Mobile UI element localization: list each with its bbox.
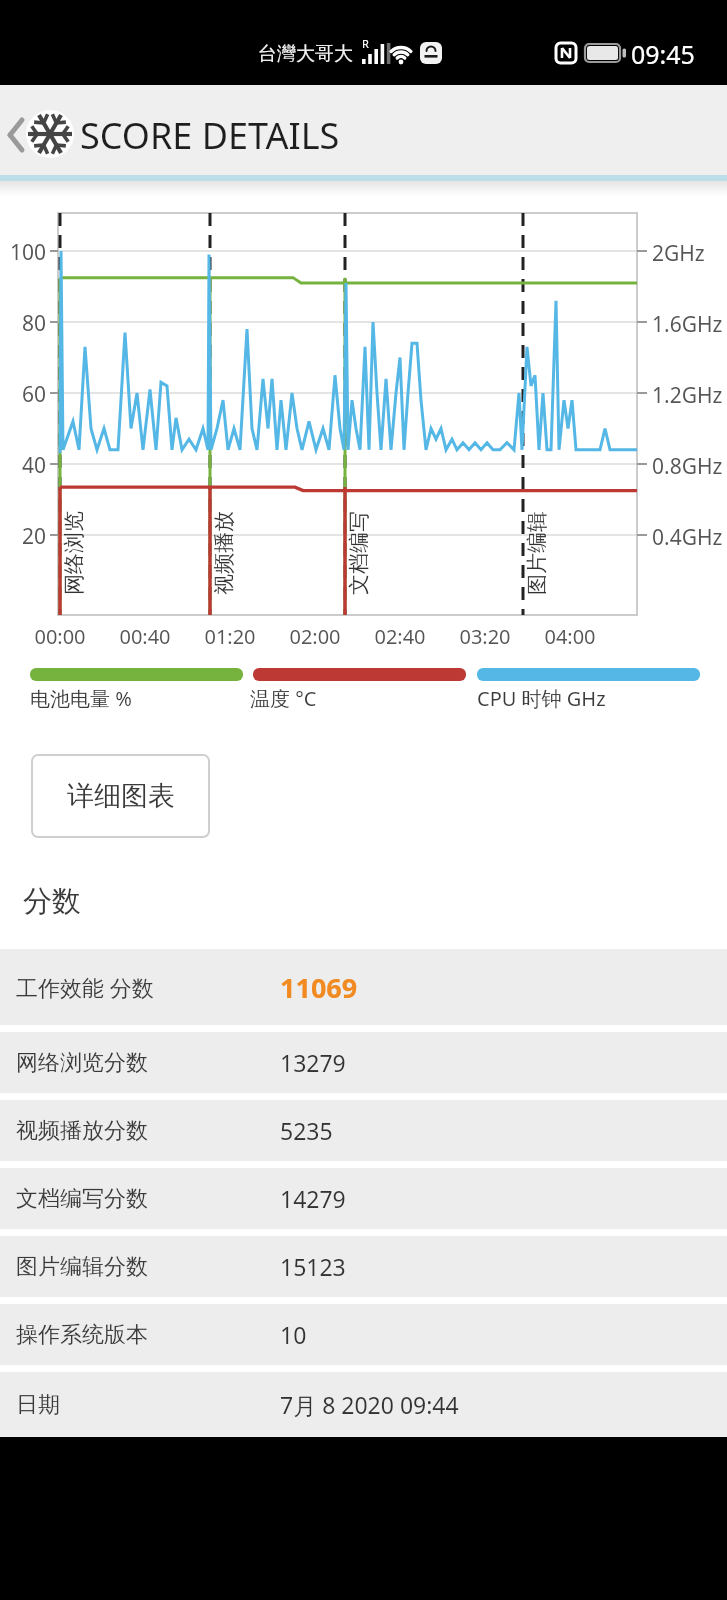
staticText: 文档编写分数	[16, 1185, 148, 1213]
staticText: 视频播放分数	[16, 1117, 148, 1145]
staticText: 温度 °C	[250, 685, 317, 712]
button[interactable]: 图片编辑分数	[0, 1236, 727, 1297]
staticText: SCORE DETAILS	[80, 111, 340, 160]
staticText: 文档编写	[346, 511, 372, 595]
button[interactable]: 操作系统版本	[0, 1304, 727, 1365]
button[interactable]: 详细图表	[33, 756, 208, 836]
staticText: 00:40	[110, 623, 180, 650]
staticText: 电池电量 %	[30, 685, 132, 712]
staticText: CPU 时钟 GHz	[477, 685, 606, 712]
staticText: 视频播放	[211, 511, 237, 595]
button[interactable]: 文档编写分数	[0, 1168, 727, 1229]
staticText: 02:40	[365, 623, 435, 650]
staticText: 00:00	[25, 623, 95, 650]
button[interactable]: 视频播放分数	[0, 1100, 727, 1161]
staticText: 网络浏览分数	[16, 1049, 148, 1077]
staticText: 5235	[280, 1115, 333, 1146]
staticText: 10	[280, 1319, 307, 1350]
staticText: 图片编辑	[524, 511, 550, 595]
staticText: 台灣大哥大	[258, 42, 353, 66]
button[interactable]: 网络浏览分数	[0, 1032, 727, 1093]
staticText: 03:20	[450, 623, 520, 650]
staticText: 13279	[280, 1047, 346, 1078]
staticText: 详细图表	[67, 779, 175, 813]
staticText: 80	[0, 309, 46, 338]
staticText: 40	[0, 451, 46, 480]
staticText: 网络浏览	[61, 511, 87, 595]
staticText: 01:20	[195, 623, 265, 650]
staticText: 11069	[280, 969, 358, 1006]
staticText: 15123	[280, 1251, 346, 1282]
staticText: 0.8GHz	[652, 452, 723, 481]
button[interactable]: 工作效能 分数	[0, 949, 727, 1025]
staticText: 工作效能 分数	[16, 972, 154, 1002]
staticText: 日期	[16, 1391, 60, 1419]
staticText: 60	[0, 380, 46, 409]
staticText: 分数	[23, 883, 81, 920]
staticText: 100	[0, 238, 46, 267]
staticText: 04:00	[535, 623, 605, 650]
staticText: 09:45	[631, 37, 695, 71]
staticText: 0.4GHz	[652, 523, 723, 552]
staticText: 20	[0, 522, 46, 551]
button[interactable]: 日期	[0, 1372, 727, 1437]
staticText: 14279	[280, 1183, 346, 1214]
staticText: R	[362, 36, 369, 51]
staticText: 2GHz	[652, 239, 705, 268]
staticText: 图片编辑分数	[16, 1253, 148, 1281]
staticText: 1.6GHz	[652, 310, 723, 339]
staticText: 02:00	[280, 623, 350, 650]
staticText: 7月 8 2020 09:44	[280, 1389, 459, 1420]
staticText: 1.2GHz	[652, 381, 723, 410]
staticText: 操作系统版本	[16, 1321, 148, 1349]
button[interactable]: SCORE DETAILS	[0, 85, 727, 175]
